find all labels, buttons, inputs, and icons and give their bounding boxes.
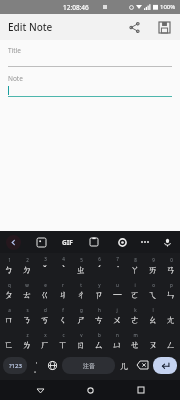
button[interactable]: 9 [144,253,162,278]
button[interactable]: Back [6,235,21,250]
button[interactable]: Punctuation [30,353,42,377]
button[interactable]: GIF [62,238,73,247]
staticText: ˙ [117,263,119,275]
staticText: ㄋ [22,314,32,325]
button[interactable]: z [18,328,36,353]
button[interactable]: 注音 [62,357,115,374]
button[interactable]: ㄤ [162,303,180,328]
staticText: t [80,282,82,288]
staticText: GIF [62,238,73,247]
staticText: d [44,307,47,313]
button[interactable]: b [90,328,108,353]
button[interactable]: 5 [72,253,90,278]
staticText: 9 [152,257,155,263]
staticText: j [116,307,118,313]
button[interactable]: 4 [54,253,72,278]
button[interactable] [8,86,172,96]
button[interactable]: k [126,303,144,328]
button[interactable]: d [36,303,54,328]
button[interactable]: More options [138,235,152,249]
button[interactable]: ㄈ [0,328,18,353]
button[interactable]: 3 [36,253,54,278]
staticText: 6 [98,256,101,262]
button[interactable]: 0 [162,253,180,278]
button[interactable]: i [126,278,144,303]
button[interactable]: Settings [115,235,129,249]
staticText: ㄠ [148,314,158,325]
staticText: Edit Note [8,20,53,34]
staticText: ㄎ [40,314,50,325]
staticText: ㄣ [166,289,176,300]
staticText: ㄑ [58,314,68,325]
button[interactable]: Recents [130,380,152,400]
button[interactable]: Enter [153,357,177,374]
staticText: l [152,307,154,313]
button[interactable]: s [18,303,36,328]
button[interactable]: 8 [126,253,144,278]
button[interactable]: q [0,278,18,303]
staticText: ˇ [43,263,47,275]
button[interactable]: w [18,278,36,303]
button[interactable]: a [0,303,18,328]
staticText: ㄉ [22,264,32,275]
staticText: 4 [62,256,65,262]
button[interactable]: 1 [0,253,18,278]
staticText: ㄏ [40,339,50,350]
staticText: 注音 [83,362,95,370]
button[interactable]: 6 [90,253,108,278]
staticText: ㄦ [120,360,130,371]
button[interactable]: t [72,278,90,303]
button[interactable]: r [54,278,72,303]
staticText: y [98,282,101,288]
button[interactable]: h [90,303,108,328]
staticText: ?123 [9,362,22,370]
button[interactable]: Change language [45,353,59,377]
button[interactable]: n [108,328,126,353]
staticText: ㄔ [76,289,86,300]
button[interactable]: x [36,328,54,353]
button[interactable]: Backspace [134,353,150,377]
button[interactable]: f [54,303,72,328]
staticText: a [8,307,11,313]
staticText: m [133,332,138,338]
button[interactable]: Save [154,17,174,37]
staticText: ㄩ [112,339,122,350]
staticText: 3 [44,256,47,262]
button[interactable]: u [108,278,126,303]
button[interactable]: ㄡ [144,328,162,353]
button[interactable]: p [162,278,180,303]
button[interactable]: Home [79,380,101,400]
button[interactable]: Clipboard [87,235,101,249]
staticText: ㄘ [94,314,104,325]
button[interactable]: c [54,328,72,353]
staticText: s [26,307,29,313]
button[interactable]: Voice input [160,235,174,249]
button[interactable]: Back [29,380,51,400]
button[interactable]: y [90,278,108,303]
button[interactable]: j [108,303,126,328]
button[interactable]: Share [124,17,144,37]
button[interactable]: e [36,278,54,303]
staticText: 。 [34,367,39,373]
staticText: c [62,332,65,338]
button[interactable]: ㄥ [162,328,180,353]
staticText: g [80,307,83,313]
staticText: ㄥ [166,339,176,350]
staticText: w [25,282,29,288]
button[interactable]: 2 [18,253,36,278]
staticText: ˊ [98,263,101,275]
staticText: v [80,332,83,338]
button[interactable]: m [126,328,144,353]
button[interactable]: ㄦ [118,353,131,377]
button[interactable]: v [72,328,90,353]
button[interactable]: 7 [108,253,126,278]
button[interactable]: Stickers [34,235,48,249]
button[interactable]: o [144,278,162,303]
button[interactable]: ?123 [3,357,27,374]
staticText: ㄍ [40,289,50,300]
staticText: 8 [134,257,137,263]
button[interactable]: g [72,303,90,328]
staticText: o [152,282,155,288]
button[interactable]: l [144,303,162,328]
